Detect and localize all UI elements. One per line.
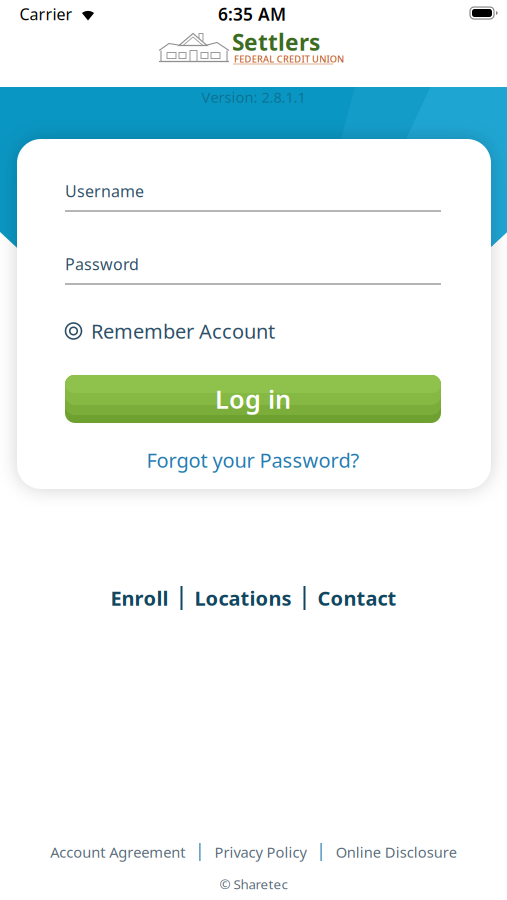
button[interactable]: Password [65,248,441,292]
staticText: Account Agreement [50,842,185,862]
staticText: © Sharetec [219,875,287,893]
staticText: Forgot your Password? [146,447,359,473]
button[interactable]: Account Agreement [50,842,185,862]
staticText: Password [65,253,139,275]
button[interactable]: Online Disclosure [336,842,457,862]
staticText: Settlers [232,27,320,57]
button[interactable]: Locations [194,585,291,611]
button[interactable]: Contact [317,585,396,611]
staticText: FEDERAL CREDIT UNION [234,53,344,65]
button[interactable]: Log in [65,375,441,423]
staticText: Enroll [110,585,168,611]
button[interactable]: Username [65,175,441,219]
staticText: Log in [215,382,291,416]
staticText: Contact [317,585,396,611]
staticText: Locations [194,585,291,611]
button[interactable]: Remember Account [65,316,441,346]
staticText: Username [65,180,144,202]
button[interactable]: Forgot your Password? [146,447,359,473]
staticText: Online Disclosure [336,842,457,862]
staticText: Version: 2.8.1.1 [201,87,305,107]
staticText: 6:35 AM [218,2,286,25]
button[interactable]: Enroll [110,585,168,611]
staticText: Carrier [19,3,72,25]
staticText: Remember Account [91,318,275,344]
staticText: Privacy Policy [214,842,306,862]
button[interactable]: Privacy Policy [214,842,306,862]
